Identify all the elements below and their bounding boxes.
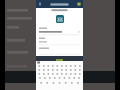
button[interactable] xyxy=(36,26,83,36)
button[interactable]: Menu xyxy=(76,1,82,7)
button[interactable]: Bank xyxy=(56,15,64,23)
button[interactable]: Back xyxy=(37,1,43,7)
button[interactable] xyxy=(36,46,83,56)
button[interactable] xyxy=(36,36,83,46)
button[interactable]: Keyboard xyxy=(36,61,83,90)
